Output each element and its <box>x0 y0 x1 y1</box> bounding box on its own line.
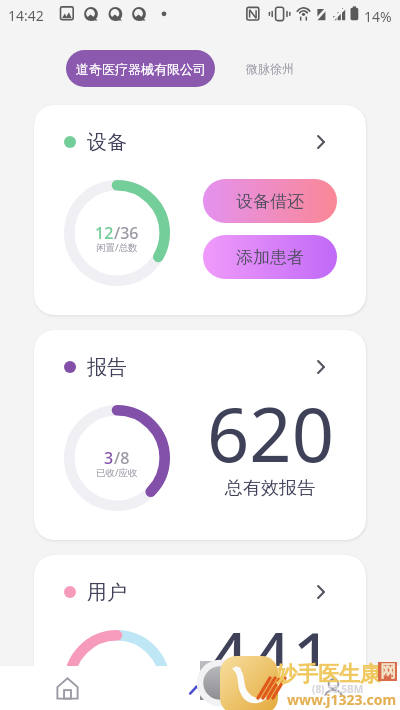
staticText: 总有效报告 <box>225 477 315 500</box>
staticText: 设备借还 <box>236 191 304 212</box>
staticText: 闲置/总数 <box>96 241 138 254</box>
staticText: /36 <box>114 222 139 244</box>
staticText: 设备 <box>87 130 127 155</box>
staticText: 微脉徐州 <box>246 61 294 76</box>
staticText: 报告 <box>87 355 127 380</box>
button[interactable]: Statistics <box>134 666 267 710</box>
staticText: 14% <box>364 7 392 26</box>
staticText: www.j1323.com <box>287 690 397 709</box>
staticText: 网 <box>380 662 396 681</box>
button[interactable]: 微脉徐州 <box>237 50 303 87</box>
staticText: 用户 <box>87 580 127 605</box>
button[interactable]: 设备借还 <box>203 179 337 223</box>
button[interactable]: 设备 <box>34 105 366 315</box>
button[interactable]: 用户 <box>34 555 366 710</box>
button[interactable]: 道奇医疗器械有限公司 <box>66 50 215 87</box>
staticText: 12 <box>95 222 114 244</box>
staticText: 620 <box>207 383 334 484</box>
staticText: 妙手医生康 <box>276 661 381 687</box>
button[interactable]: 报告 <box>34 330 366 540</box>
staticText: 添加患者 <box>236 247 304 268</box>
button[interactable]: Home <box>0 666 134 710</box>
staticText: /8 <box>114 447 130 469</box>
button[interactable]: 添加患者 <box>203 235 337 279</box>
staticText: 道奇医疗器械有限公司 <box>76 61 206 77</box>
staticText: 441 <box>207 608 334 709</box>
staticText: 3 <box>104 447 114 469</box>
staticText: (8) 13.5BM <box>312 682 364 696</box>
staticText: 14:42 <box>8 6 44 25</box>
button[interactable]: Profile <box>267 666 400 710</box>
staticText: 已收/应收 <box>96 466 138 479</box>
